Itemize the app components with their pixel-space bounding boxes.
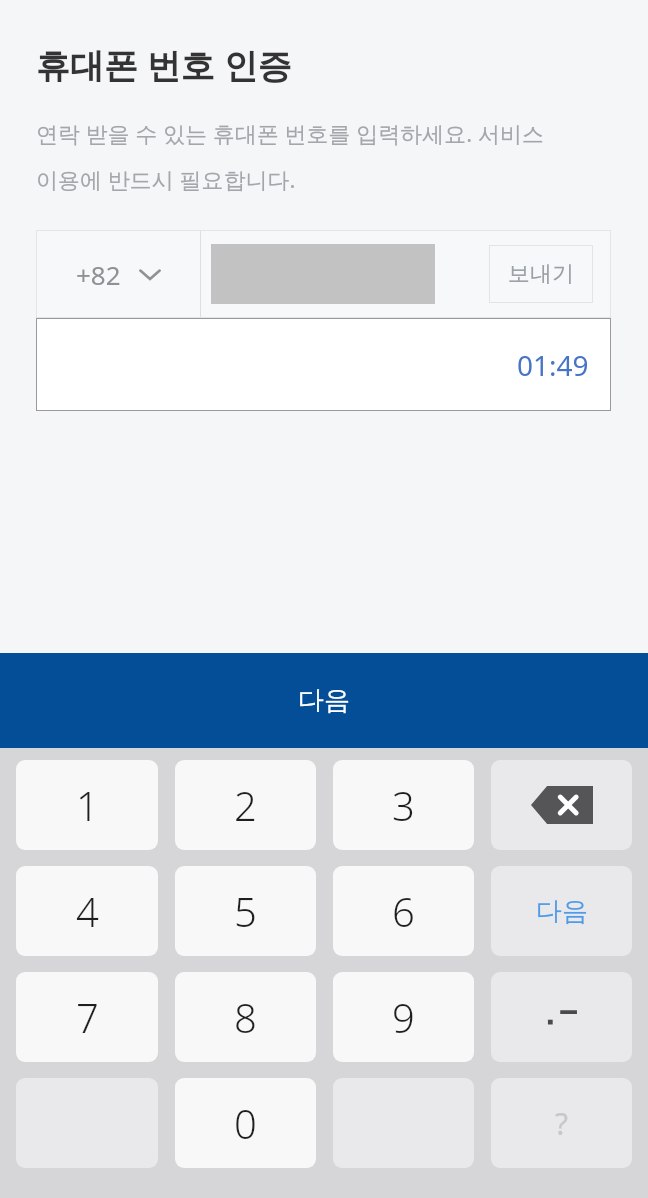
- button[interactable]: 7: [16, 972, 158, 1062]
- staticText: 보내기: [508, 260, 574, 288]
- button[interactable]: 6: [333, 866, 474, 956]
- button[interactable]: Backspace: [491, 760, 632, 850]
- staticText: 연락 받을 수 있는 휴대폰 번호를 입력하세요. 서비스 이용에 반드시 필요…: [36, 118, 544, 194]
- staticText: 7: [76, 990, 99, 1044]
- button[interactable]: Dot and dash: [491, 972, 632, 1062]
- button[interactable]: 2: [175, 760, 316, 850]
- staticText: 다음: [536, 895, 588, 928]
- staticText: 4: [76, 884, 99, 938]
- button[interactable]: 8: [175, 972, 316, 1062]
- button[interactable]: 01:49: [36, 318, 611, 411]
- staticText: 3: [392, 778, 415, 832]
- staticText: +82: [76, 257, 121, 292]
- staticText: 6: [392, 884, 415, 938]
- staticText: 휴대폰 번호 인증: [36, 42, 292, 88]
- staticText: 0: [234, 1096, 257, 1150]
- staticText: 9: [392, 990, 415, 1044]
- button[interactable]: 5: [175, 866, 316, 956]
- button[interactable]: 다음: [0, 653, 648, 748]
- button[interactable]: 보내기: [489, 245, 593, 303]
- button[interactable]: 다음: [491, 866, 632, 956]
- staticText: 8: [234, 990, 257, 1044]
- staticText: 5: [234, 884, 257, 938]
- button[interactable]: 0: [175, 1078, 316, 1168]
- button[interactable]: +82: [36, 230, 200, 318]
- staticText: 2: [234, 778, 257, 832]
- staticText: 01:49: [517, 346, 589, 384]
- button[interactable]: 4: [16, 866, 158, 956]
- staticText: 1: [76, 778, 99, 832]
- button[interactable]: 9: [333, 972, 474, 1062]
- button[interactable]: 3: [333, 760, 474, 850]
- button[interactable]: [201, 230, 489, 318]
- staticText: 다음: [298, 684, 350, 717]
- button[interactable]: 1: [16, 760, 158, 850]
- staticText: ?: [555, 1103, 569, 1144]
